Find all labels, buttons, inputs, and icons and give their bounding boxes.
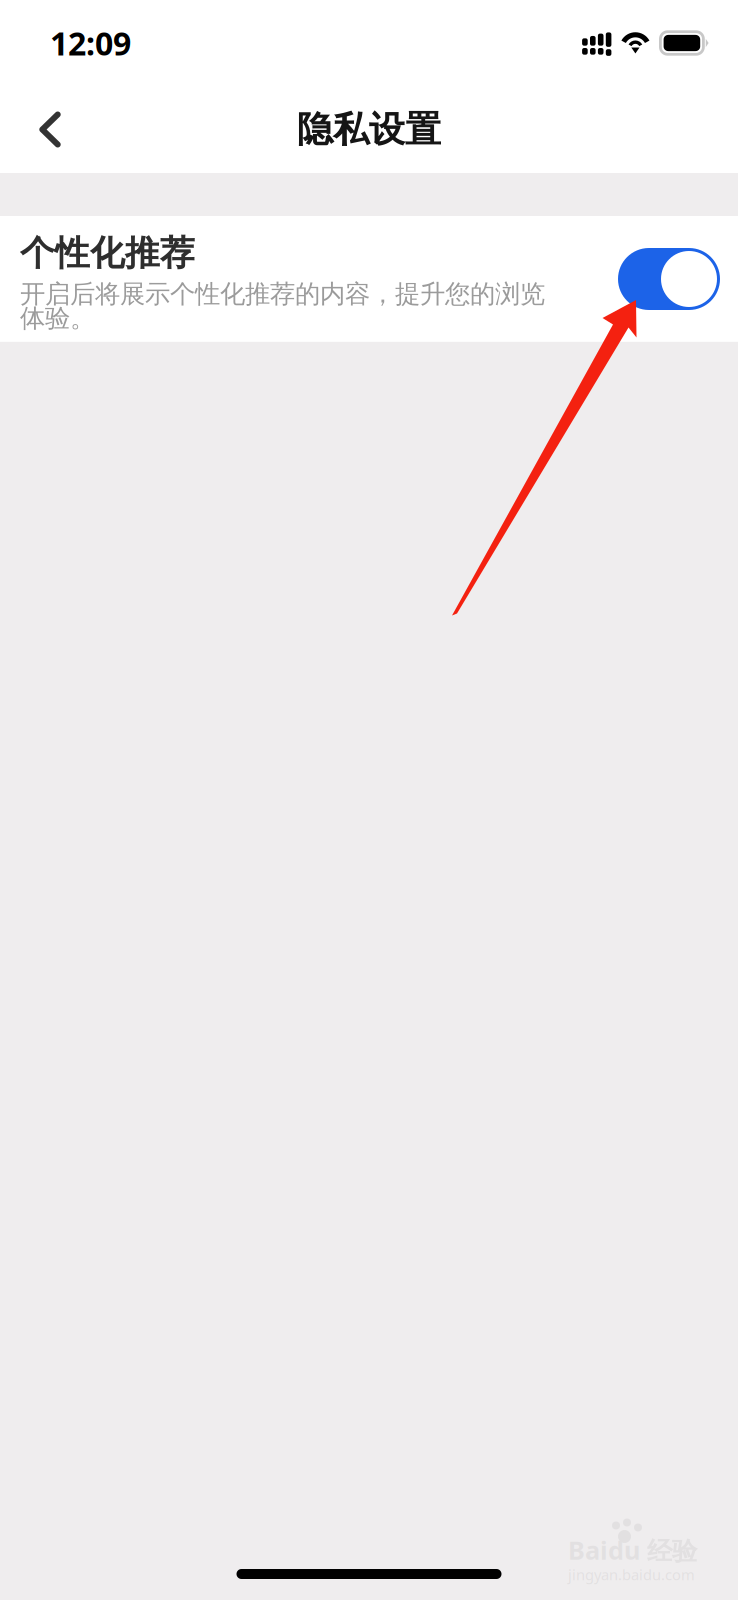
staticText: 开启后将展示个性化推荐的内容，提升您的浏览体验。 <box>20 279 545 334</box>
staticText: 个性化推荐 <box>20 232 195 275</box>
staticText: jingyan.baidu.com <box>568 1565 695 1584</box>
button[interactable]: 个性化推荐 <box>618 232 720 310</box>
staticText: Baidu 经验 <box>568 1533 697 1567</box>
button[interactable]: 返回 <box>10 86 90 172</box>
staticText: 隐私设置 <box>297 107 441 152</box>
staticText: 12:09 <box>50 22 131 64</box>
